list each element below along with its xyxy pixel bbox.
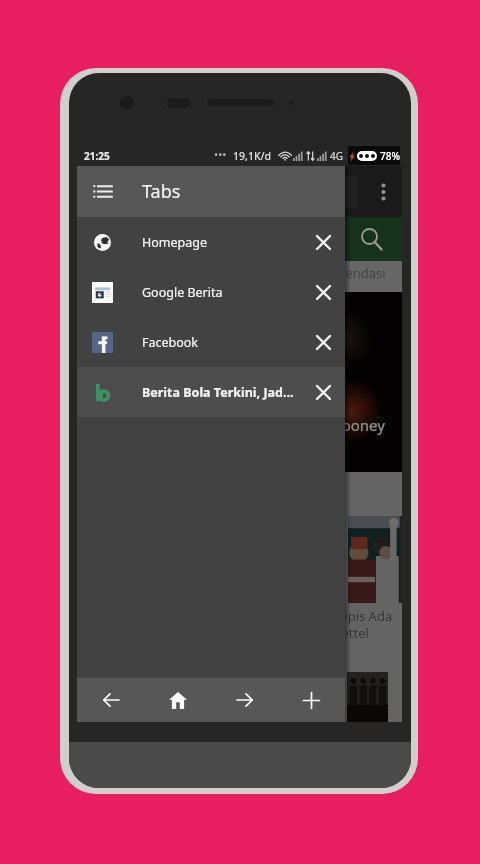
staticText: Homepage bbox=[142, 234, 295, 251]
staticText: 19,1K/d bbox=[233, 149, 272, 163]
staticText: Wayne Rooney bbox=[281, 415, 385, 435]
button[interactable]: Back bbox=[77, 678, 144, 722]
button[interactable]: Close tab bbox=[301, 367, 345, 417]
button[interactable]: Close tab bbox=[301, 217, 345, 267]
staticText: 21:25 bbox=[84, 149, 110, 163]
staticText: Google Berita bbox=[142, 284, 295, 301]
button[interactable]: Google Berita bbox=[77, 267, 345, 317]
button[interactable]: Tabs bbox=[77, 166, 345, 217]
button[interactable]: Search bbox=[354, 222, 388, 256]
staticText: Rekomendasi bbox=[303, 264, 386, 282]
button[interactable]: More options bbox=[364, 166, 402, 217]
staticText: 4G bbox=[330, 149, 343, 163]
staticText: 78% bbox=[380, 149, 400, 163]
button[interactable]: Berita Bola Terkini, Jad… bbox=[77, 367, 345, 417]
button[interactable]: Close tab bbox=[301, 267, 345, 317]
staticText: ••• bbox=[214, 147, 227, 162]
staticText: Facebook bbox=[142, 334, 295, 351]
button[interactable]: New tab bbox=[278, 678, 345, 722]
staticText: Tepis Ada Vettel bbox=[334, 607, 393, 642]
button[interactable]: Home bbox=[144, 678, 211, 722]
button[interactable]: Forward bbox=[211, 678, 278, 722]
button[interactable]: Facebook bbox=[77, 317, 345, 367]
button[interactable]: Homepage bbox=[77, 217, 345, 267]
staticText: Tabs bbox=[142, 179, 181, 204]
button[interactable]: Close tab bbox=[301, 317, 345, 367]
staticText: Berita Bola Terkini, Jad… bbox=[142, 384, 295, 401]
